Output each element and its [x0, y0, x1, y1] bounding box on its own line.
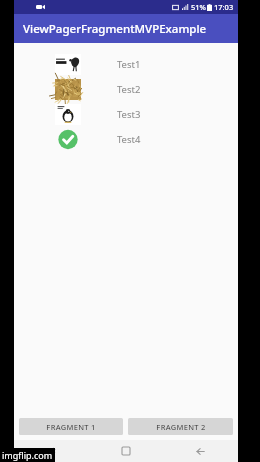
- staticText: 51%: [191, 2, 206, 12]
- button[interactable]: Test3: [14, 102, 238, 127]
- button[interactable]: Recent apps: [14, 440, 88, 462]
- staticText: ViewPagerFragmentMVPExample: [23, 21, 207, 37]
- staticText: Test3: [117, 108, 141, 121]
- staticText: FRAGMENT 1: [46, 422, 96, 432]
- button[interactable]: Test2: [14, 77, 238, 102]
- button[interactable]: Test1: [14, 52, 238, 77]
- staticText: 17:03: [214, 2, 234, 12]
- button[interactable]: Home: [88, 440, 163, 462]
- staticText: imgflip.com: [2, 449, 53, 461]
- staticText: Test1: [117, 58, 141, 71]
- button[interactable]: Test4: [14, 127, 238, 152]
- button[interactable]: FRAGMENT 2: [128, 418, 233, 435]
- staticText: Test2: [117, 83, 141, 96]
- staticText: FRAGMENT 2: [156, 422, 206, 432]
- button[interactable]: FRAGMENT 1: [19, 418, 123, 435]
- button[interactable]: Back: [163, 440, 238, 462]
- staticText: Test4: [117, 133, 141, 146]
